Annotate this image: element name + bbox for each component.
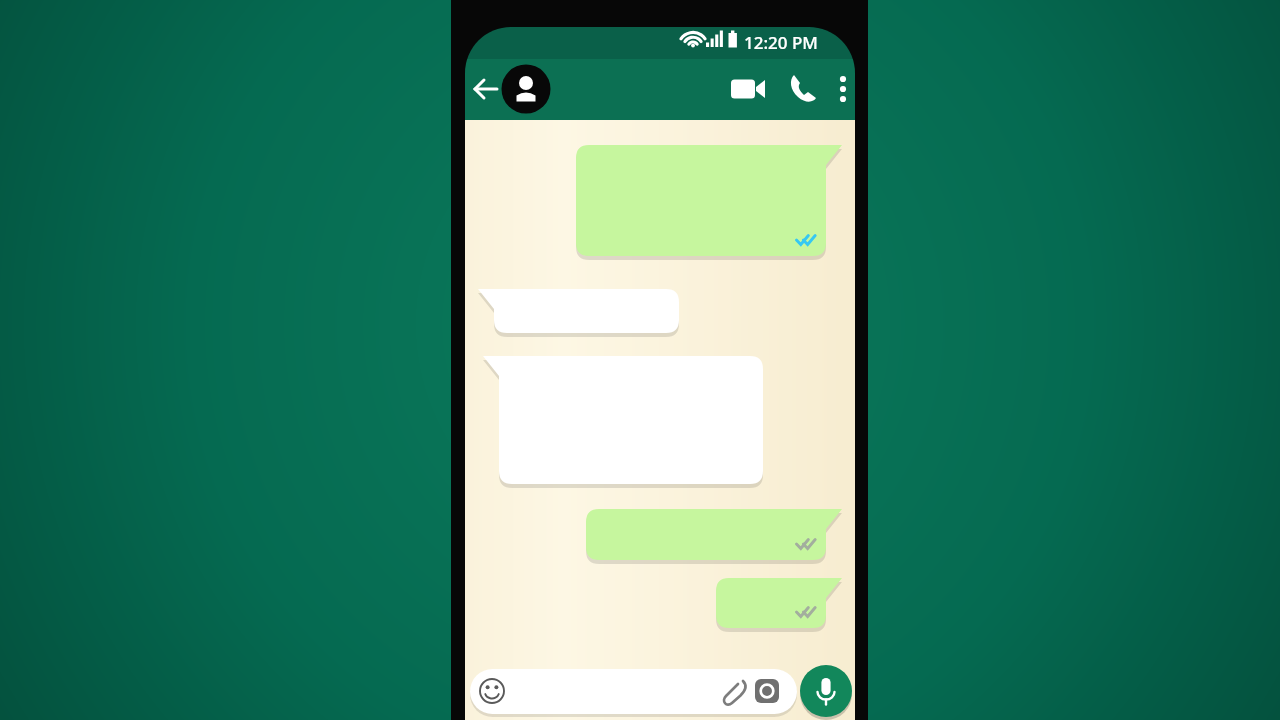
button[interactable]: Contact profile bbox=[502, 65, 550, 113]
button[interactable]: Attach bbox=[718, 673, 756, 711]
button[interactable]: Message input bbox=[470, 669, 797, 714]
button[interactable]: Back bbox=[470, 67, 506, 111]
button[interactable]: Camera bbox=[749, 673, 787, 711]
button[interactable]: More options bbox=[825, 67, 861, 111]
button[interactable]: Voice call bbox=[781, 67, 825, 111]
button[interactable]: Video call bbox=[726, 67, 770, 111]
button[interactable]: Emoji bbox=[474, 673, 512, 711]
staticText: 12:20 PM bbox=[744, 31, 818, 54]
button[interactable]: Record voice message bbox=[800, 665, 852, 717]
